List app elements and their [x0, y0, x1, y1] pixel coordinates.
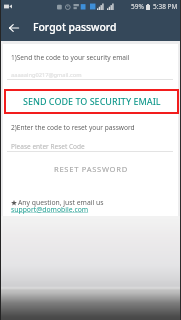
button[interactable]: RESET PASSWORD	[3, 160, 178, 177]
staticText: 5:38 PM	[153, 2, 178, 11]
staticText: 59%	[131, 2, 144, 11]
button[interactable]: Back	[1, 13, 28, 40]
staticText: Please enter Reset Code	[11, 142, 85, 151]
staticText: RESET PASSWORD	[54, 164, 128, 174]
staticText: Forgot password	[33, 20, 117, 34]
staticText: aaaaaing0217@gmail.com	[11, 71, 82, 79]
button[interactable]: SEND CODE TO SECURITY EMAIL	[4, 89, 179, 114]
staticText: support@domobile.com	[11, 205, 89, 214]
staticText: SEND CODE TO SECURITY EMAIL	[23, 95, 161, 107]
staticText: 2)Enter the code to reset your password	[11, 123, 135, 132]
staticText: 1)Send the code to your security email	[11, 53, 130, 62]
staticText: Any question, just email us	[18, 198, 104, 207]
button[interactable]: support@domobile.com	[11, 205, 89, 214]
